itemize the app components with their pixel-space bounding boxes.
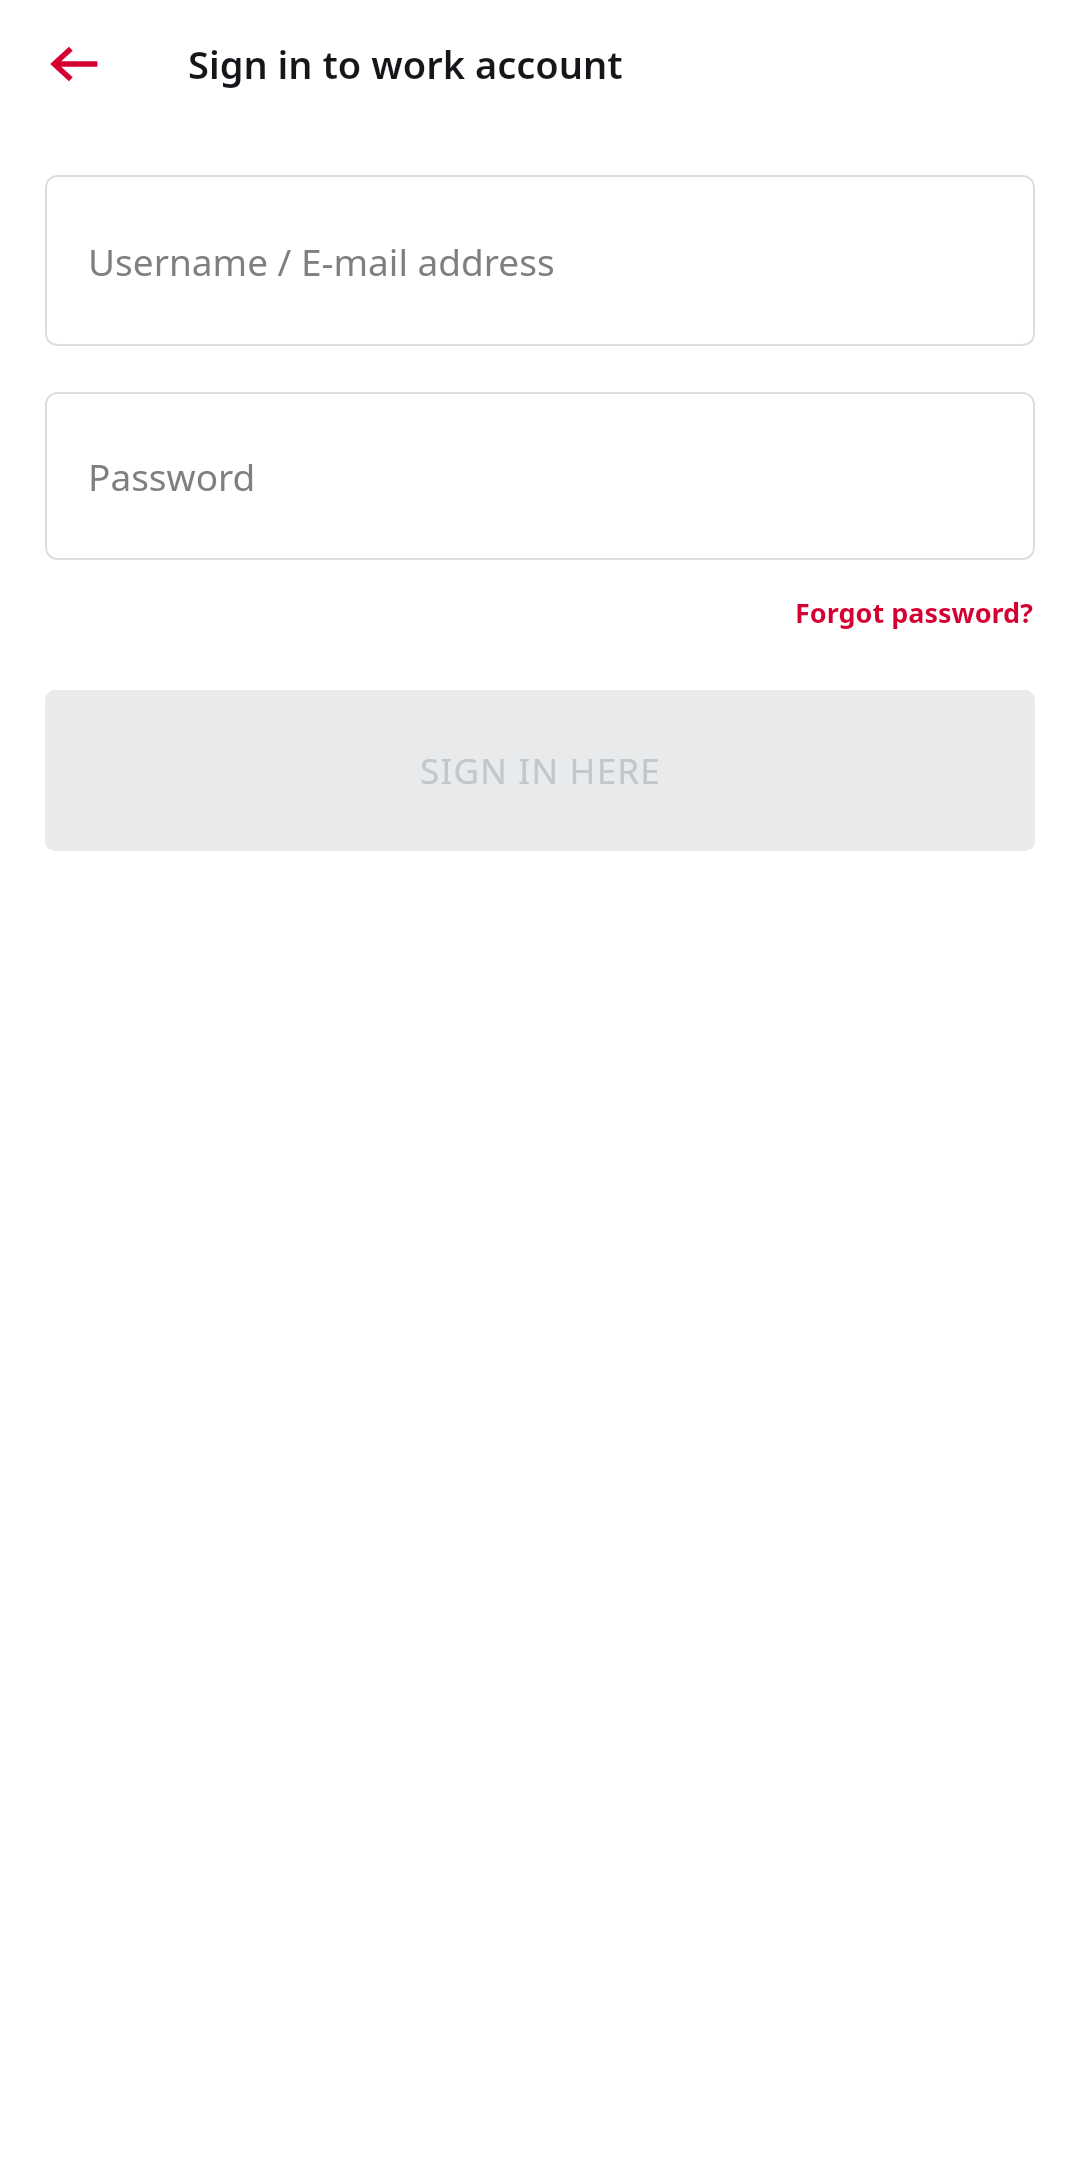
staticText: SIGN IN HERE bbox=[420, 747, 661, 795]
button[interactable]: SIGN IN HERE bbox=[45, 690, 1035, 851]
staticText: Password bbox=[88, 451, 256, 501]
staticText: Username / E-mail address bbox=[88, 236, 555, 286]
button[interactable]: Back bbox=[22, 11, 128, 117]
staticText: Sign in to work account bbox=[188, 38, 623, 90]
button[interactable]: Forgot password? bbox=[793, 588, 1035, 637]
button[interactable]: Username / E-mail address bbox=[45, 175, 1035, 346]
button[interactable]: Password bbox=[45, 392, 1035, 560]
staticText: Forgot password? bbox=[795, 594, 1033, 631]
